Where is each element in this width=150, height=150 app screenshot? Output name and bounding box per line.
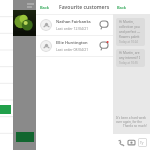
button[interactable]: Back — [39, 5, 51, 10]
staticText: Today at 10:24 — [119, 40, 138, 44]
button[interactable]: Call — [116, 138, 125, 147]
staticText: and perfect — with beau — [119, 30, 142, 34]
button[interactable]: Type a message — [138, 138, 147, 147]
button[interactable]: Hi Martin, are you avai — [116, 49, 145, 67]
staticText: Back — [40, 5, 50, 10]
staticText: any interest? I have a c — [119, 56, 142, 60]
staticText: Nathan Fairbanks — [56, 19, 91, 24]
staticText: Today at 10:55 — [119, 61, 138, 65]
button[interactable]: Nathan Fairbanks — [36, 15, 113, 35]
staticText: flowers palett samples t — [119, 35, 142, 39]
staticText: Back — [117, 5, 127, 10]
button[interactable]: Back — [116, 5, 128, 10]
staticText: over again, for the coming — [116, 120, 147, 124]
staticText: Ellie Huntington — [56, 40, 88, 45]
staticText: Last order 08/04/21 — [56, 47, 89, 52]
staticText: Favourite customers — [59, 4, 110, 11]
staticText: Type a message — [140, 141, 145, 145]
staticText: Hi Martin, thanks you a — [119, 20, 142, 24]
staticText: It's been a hard week nouveau — [116, 116, 147, 120]
button[interactable]: Hi Martin, thanks you a — [116, 18, 145, 46]
button[interactable]: Ellie Huntington — [36, 36, 113, 56]
button[interactable]: Camera — [127, 138, 136, 147]
staticText: Hi Martin, are you avai — [119, 51, 142, 55]
button[interactable]: Message customer — [99, 41, 109, 51]
button[interactable]: Message customer — [99, 20, 109, 30]
staticText: collection you would lik — [119, 25, 142, 29]
staticText: Thanks so much! — [123, 124, 147, 128]
staticText: Last order 12/04/21 — [56, 26, 89, 31]
button[interactable]: Video thumbnail — [13, 10, 36, 36]
